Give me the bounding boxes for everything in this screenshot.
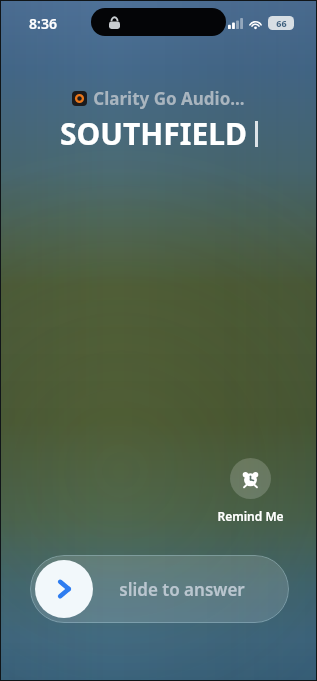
- staticText: Clarity Go Audio...: [93, 87, 245, 110]
- staticText: slide to answer: [119, 578, 245, 601]
- button[interactable]: Slide to answer: [30, 555, 289, 623]
- staticText: SOUTHFIELD: [60, 113, 247, 154]
- staticText: 8:36: [29, 14, 57, 33]
- button[interactable]: Answer call: [35, 560, 93, 618]
- other: Remind Me: [230, 458, 271, 499]
- button[interactable]: Remind Me: [213, 456, 288, 526]
- staticText: Remind Me: [217, 508, 284, 524]
- staticText: 66: [276, 17, 287, 29]
